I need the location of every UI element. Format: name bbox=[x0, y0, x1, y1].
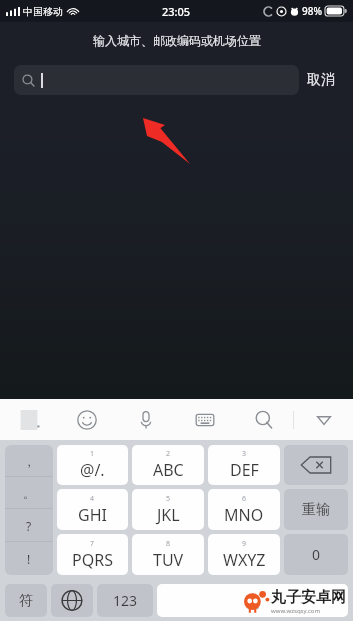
staticText: 0 bbox=[312, 545, 321, 564]
staticText: JKL bbox=[157, 504, 180, 526]
staticText: PQRS bbox=[72, 549, 113, 571]
button[interactable]: Space, voice input bbox=[157, 584, 348, 617]
staticText: 23:05 bbox=[162, 4, 191, 19]
staticText: 丸子安卓网 bbox=[271, 588, 346, 607]
staticText: @/. bbox=[80, 459, 105, 481]
button[interactable]: 123 bbox=[97, 584, 153, 617]
button[interactable]: 7 bbox=[57, 534, 128, 575]
button[interactable]: 6 bbox=[208, 489, 280, 530]
button[interactable]: 0 bbox=[284, 534, 348, 575]
button[interactable]: ! bbox=[5, 542, 53, 575]
button[interactable]: Backspace bbox=[284, 445, 348, 485]
staticText: WXYZ bbox=[223, 549, 266, 571]
staticText: ABC bbox=[153, 459, 184, 481]
staticText: ， bbox=[23, 454, 35, 469]
staticText: 123 bbox=[113, 591, 138, 610]
staticText: 1 bbox=[90, 449, 95, 459]
button[interactable]: ? bbox=[5, 509, 53, 542]
staticText: TUV bbox=[153, 549, 184, 571]
staticText: www.wzsqsy.com bbox=[271, 607, 321, 615]
button[interactable]: ， bbox=[5, 445, 53, 477]
button[interactable]: 符 bbox=[5, 584, 47, 617]
button[interactable]: Search bbox=[234, 399, 293, 440]
button[interactable]: Emoji bbox=[58, 399, 116, 440]
staticText: 中国移动 bbox=[23, 5, 63, 18]
staticText: ? bbox=[26, 518, 32, 534]
button[interactable]: 5 bbox=[132, 489, 204, 530]
staticText: MNO bbox=[224, 504, 264, 526]
staticText: 9 bbox=[242, 539, 247, 549]
staticText: DEF bbox=[230, 459, 259, 481]
button[interactable] bbox=[14, 65, 299, 95]
button[interactable]: 2 bbox=[132, 445, 204, 485]
staticText: ! bbox=[27, 551, 31, 567]
staticText: 8 bbox=[166, 539, 171, 549]
staticText: GHI bbox=[78, 504, 107, 526]
button[interactable]: Keyboard theme bbox=[0, 399, 58, 440]
button[interactable]: Voice input bbox=[116, 399, 175, 440]
staticText: 98% bbox=[302, 4, 322, 18]
staticText: 取消 bbox=[307, 71, 335, 89]
button[interactable]: 取消 bbox=[299, 65, 343, 95]
button[interactable]: 3 bbox=[208, 445, 280, 485]
staticText: 7 bbox=[90, 539, 95, 549]
staticText: 4 bbox=[90, 494, 95, 504]
button[interactable]: 重输 bbox=[284, 489, 348, 530]
staticText: 。 bbox=[23, 486, 35, 501]
staticText: 6 bbox=[242, 494, 247, 504]
button[interactable]: Hide keyboard bbox=[294, 399, 353, 440]
button[interactable]: Switch language bbox=[51, 584, 93, 617]
button[interactable]: 8 bbox=[132, 534, 204, 575]
staticText: 输入城市、邮政编码或机场位置 bbox=[93, 33, 261, 48]
staticText: 重输 bbox=[302, 501, 330, 519]
staticText: 5 bbox=[166, 494, 171, 504]
button[interactable]: 9 bbox=[208, 534, 280, 575]
staticText: 3 bbox=[242, 449, 247, 459]
staticText: 符 bbox=[19, 592, 33, 610]
button[interactable]: 。 bbox=[5, 477, 53, 509]
staticText: 2 bbox=[166, 449, 171, 459]
button[interactable]: Keyboard layout bbox=[175, 399, 234, 440]
button[interactable]: 1 bbox=[57, 445, 128, 485]
button[interactable]: 4 bbox=[57, 489, 128, 530]
